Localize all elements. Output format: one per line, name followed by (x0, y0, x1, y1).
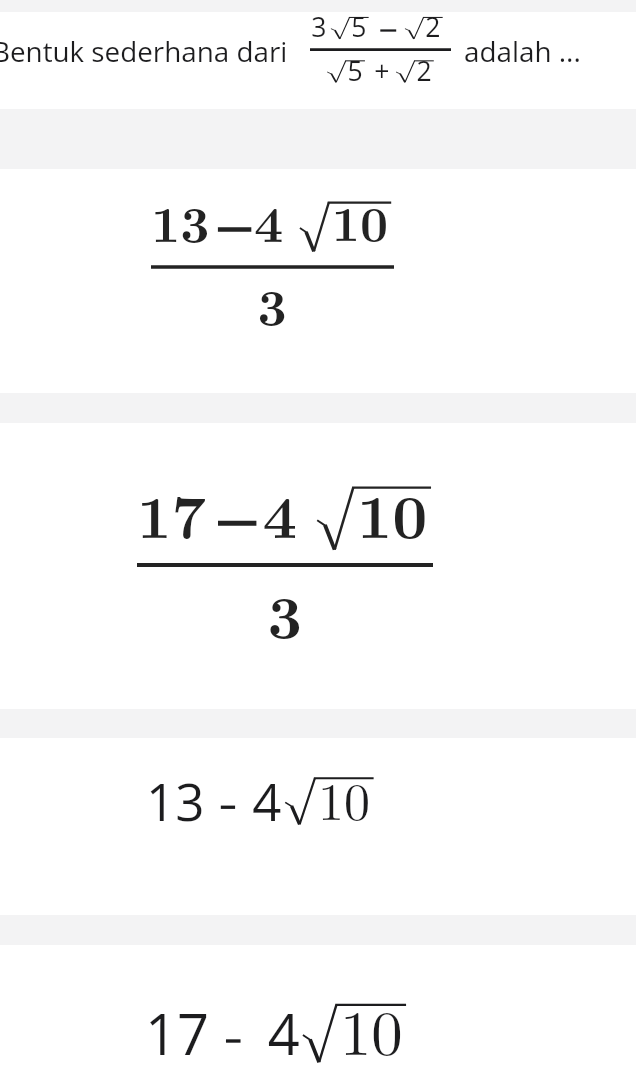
button[interactable]: Pilihan B: (17 − 4√10) / 3 (0, 423, 636, 709)
button[interactable]: Pilihan C: 13 - 4√10 (0, 738, 636, 915)
button[interactable]: Pilihan D: 17 - 4√10 (0, 945, 636, 1073)
button[interactable]: Pilihan A: (13 − 4√10) / 3 (0, 169, 636, 393)
